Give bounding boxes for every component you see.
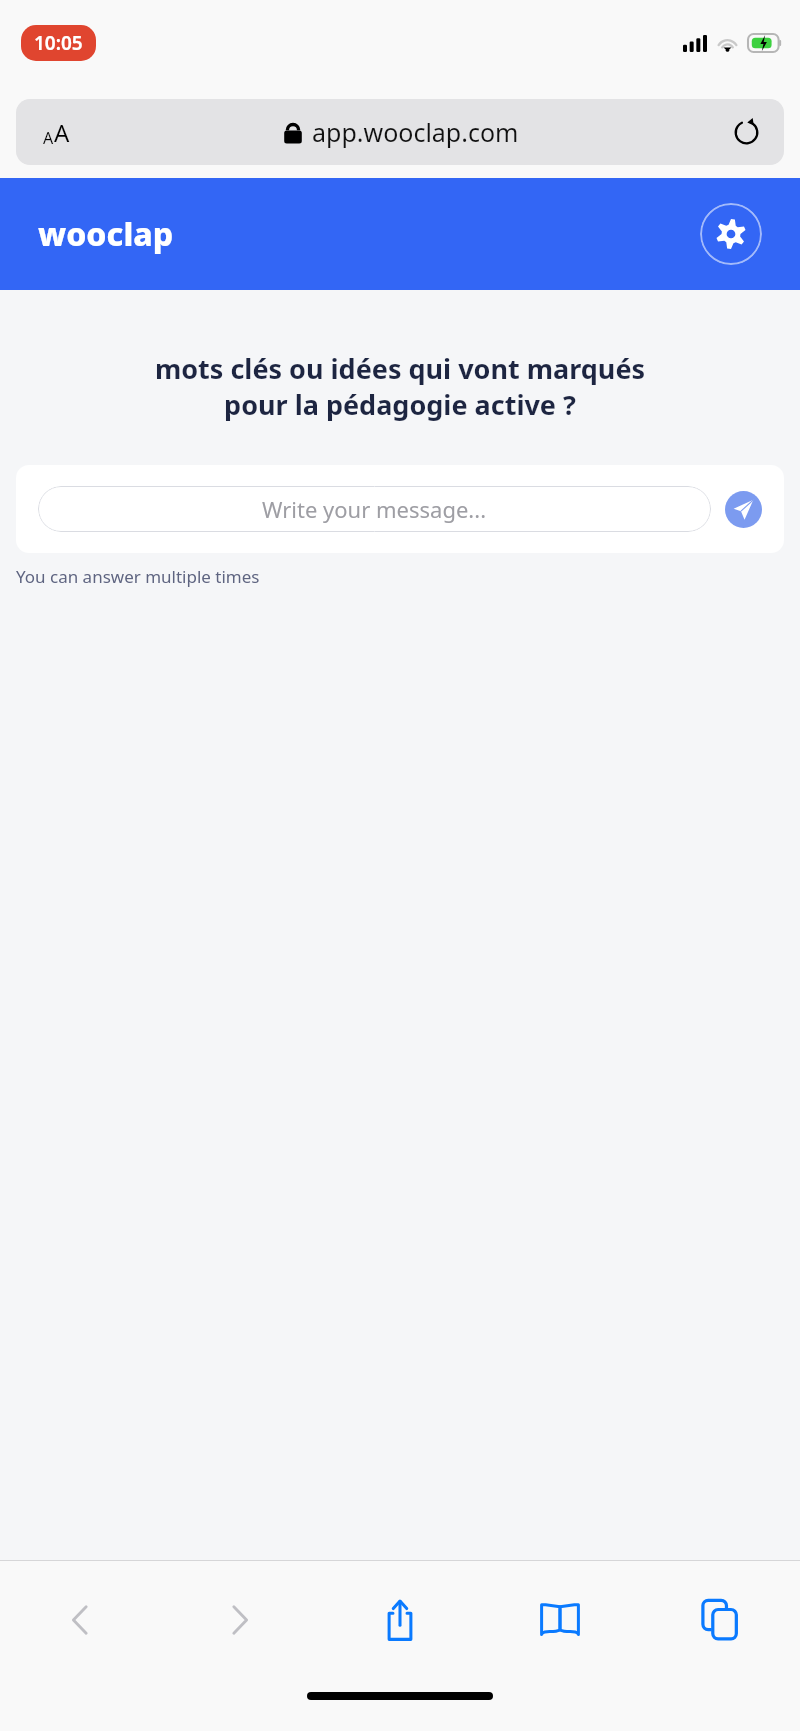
button[interactable]: Bookmarks [480, 1561, 640, 1679]
staticText: You can answer multiple times [16, 565, 260, 588]
staticText: A [54, 116, 70, 149]
button[interactable]: Share [320, 1561, 480, 1679]
button[interactable]: app.wooclap.com [16, 99, 784, 165]
staticText: wooclap [38, 212, 174, 256]
button[interactable]: Text size options [28, 104, 84, 160]
button[interactable]: Write your message... [38, 486, 711, 532]
button[interactable]: Reload page [720, 106, 772, 158]
staticText: Write your message... [262, 494, 487, 524]
button[interactable]: Settings [700, 203, 762, 265]
button[interactable]: Send message [725, 491, 762, 528]
button[interactable]: Tabs [640, 1561, 800, 1679]
button[interactable]: Forward [160, 1561, 320, 1679]
button[interactable]: Back [0, 1561, 160, 1679]
staticText: 10:05 [34, 30, 83, 56]
staticText: A [43, 127, 54, 149]
staticText: app.wooclap.com [312, 115, 519, 149]
staticText: mots clés ou idées qui vont marqués pour… [18, 350, 782, 423]
